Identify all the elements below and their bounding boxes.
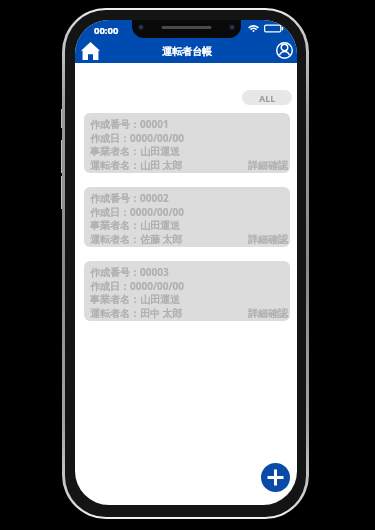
staticText: 運転者台帳 bbox=[162, 45, 212, 58]
staticText: 運転者名：田中 太郎 bbox=[90, 306, 183, 320]
staticText: ALL bbox=[259, 92, 276, 104]
staticText: 事業者名：山田運送 bbox=[90, 145, 180, 158]
staticText: 運転者名：佐藤 太郎 bbox=[90, 232, 183, 246]
button[interactable]: 作成番号：00001 bbox=[84, 113, 290, 173]
staticText: 作成番号：00003 bbox=[90, 265, 169, 279]
button[interactable]: 作成番号：00002 bbox=[84, 187, 290, 247]
staticText: 作成日：0000/00/00 bbox=[90, 205, 185, 219]
staticText: 事業者名：山田運送 bbox=[90, 293, 180, 306]
staticText: 作成日：0000/00/00 bbox=[90, 131, 185, 145]
button[interactable]: Home bbox=[80, 41, 100, 60]
staticText: 00:00 bbox=[94, 24, 119, 37]
staticText: 事業者名：山田運送 bbox=[90, 219, 180, 232]
button[interactable]: ALL bbox=[242, 90, 292, 105]
staticText: 作成番号：00002 bbox=[90, 191, 169, 205]
staticText: 作成番号：00001 bbox=[90, 117, 169, 131]
staticText: 詳細確認 bbox=[248, 307, 288, 320]
button[interactable]: Account bbox=[275, 41, 294, 60]
staticText: 詳細確認 bbox=[248, 233, 288, 246]
staticText: 作成日：0000/00/00 bbox=[90, 279, 185, 293]
button[interactable]: Add bbox=[261, 463, 290, 492]
staticText: 運転者名：山田 太郎 bbox=[90, 158, 183, 172]
button[interactable]: 作成番号：00003 bbox=[84, 261, 290, 321]
staticText: 詳細確認 bbox=[248, 159, 288, 172]
